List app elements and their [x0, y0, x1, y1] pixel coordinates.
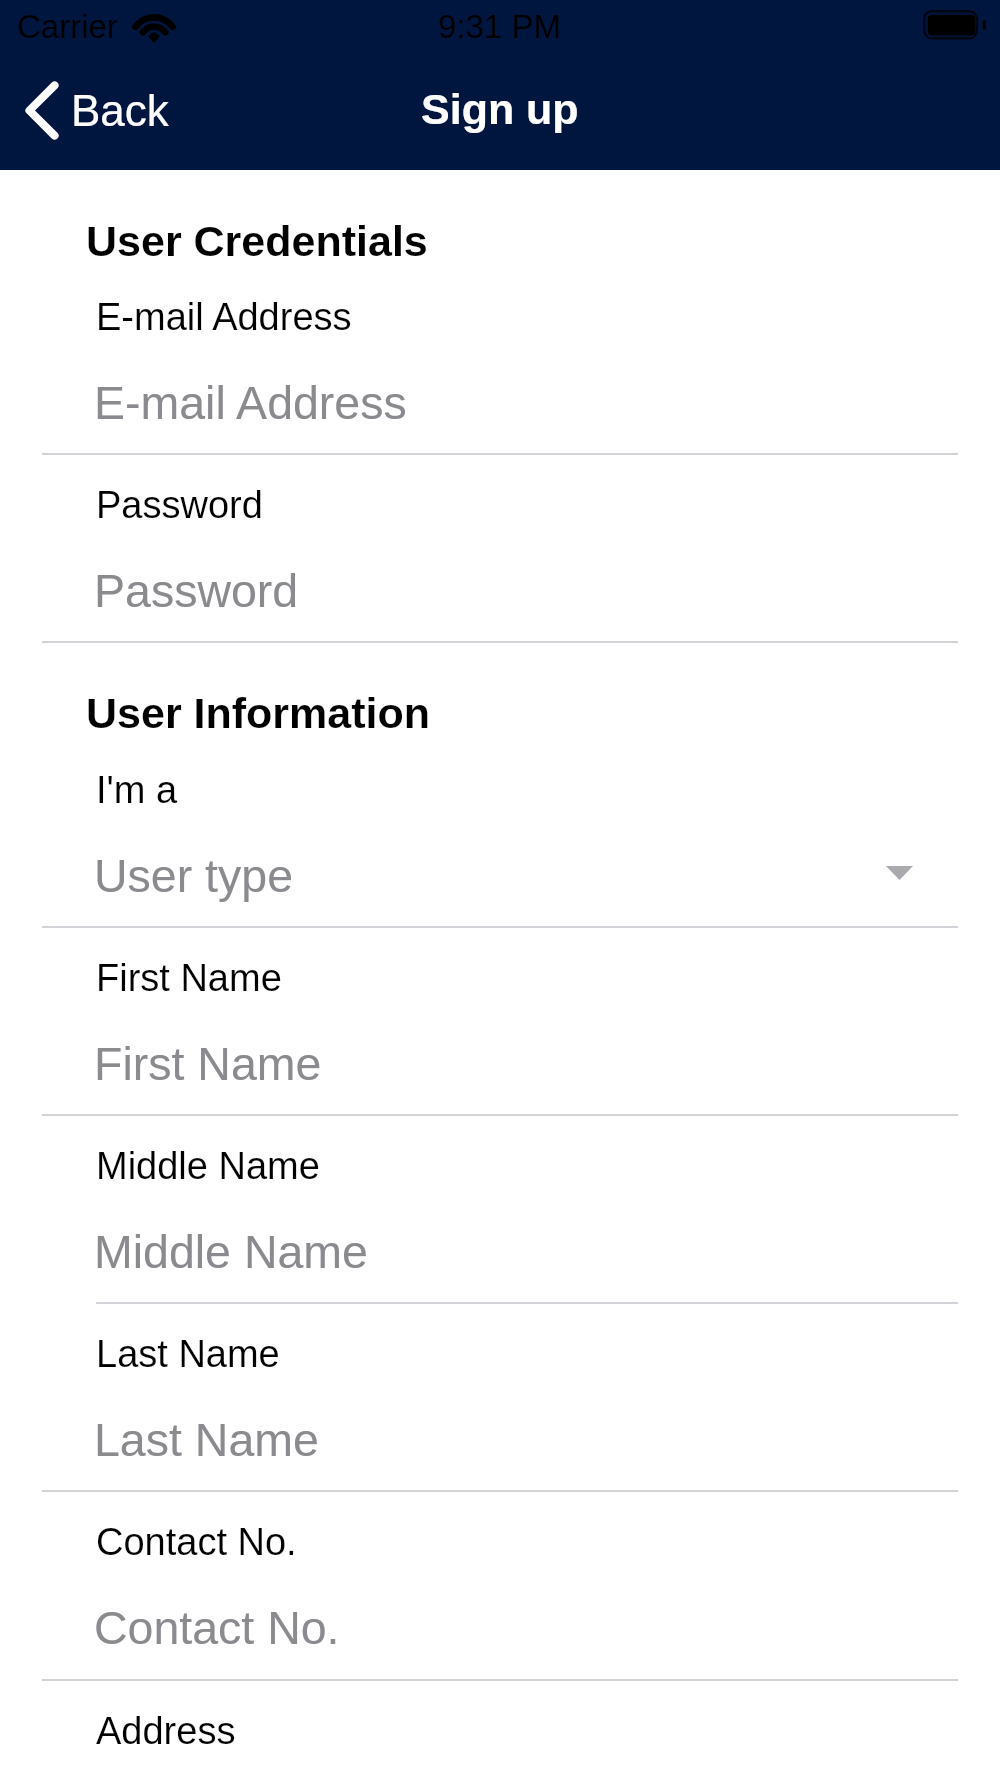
button[interactable]: I'm a: [0, 740, 1000, 928]
staticText: First Name: [96, 957, 282, 999]
button[interactable]: Last Name: [0, 1304, 1000, 1492]
button[interactable]: First Name: [0, 928, 1000, 1116]
staticText: Address: [96, 1710, 236, 1752]
staticText: Last Name: [96, 1333, 280, 1375]
staticText: Password: [94, 565, 299, 617]
staticText: Middle Name: [94, 1226, 368, 1278]
staticText: Last Name: [94, 1414, 319, 1466]
staticText: Back: [71, 86, 169, 135]
staticText: Contact No.: [96, 1521, 297, 1563]
other: Open user type picker: [886, 866, 913, 880]
staticText: E-mail Address: [94, 377, 407, 429]
button[interactable]: Middle Name: [0, 1116, 1000, 1304]
staticText: 9:31 PM: [438, 8, 561, 45]
button[interactable]: Back: [0, 71, 189, 150]
button[interactable]: Contact No.: [0, 1492, 1000, 1681]
button[interactable]: E-mail Address: [0, 267, 1000, 455]
staticText: Contact No.: [94, 1602, 340, 1654]
staticText: Sign up: [421, 85, 579, 133]
staticText: User Credentials: [86, 217, 428, 265]
staticText: Carrier: [17, 8, 118, 45]
staticText: User type: [94, 850, 293, 902]
staticText: First Name: [94, 1038, 322, 1090]
staticText: Password: [96, 484, 263, 526]
staticText: User Information: [86, 689, 431, 737]
button[interactable]: Address: [0, 1681, 1000, 1778]
staticText: E-mail Address: [96, 296, 352, 338]
staticText: Middle Name: [96, 1145, 320, 1187]
button[interactable]: Password: [0, 455, 1000, 643]
other: Battery full: [922, 9, 988, 41]
other: Wi-Fi signal: [131, 8, 176, 44]
staticText: I'm a: [96, 769, 178, 811]
